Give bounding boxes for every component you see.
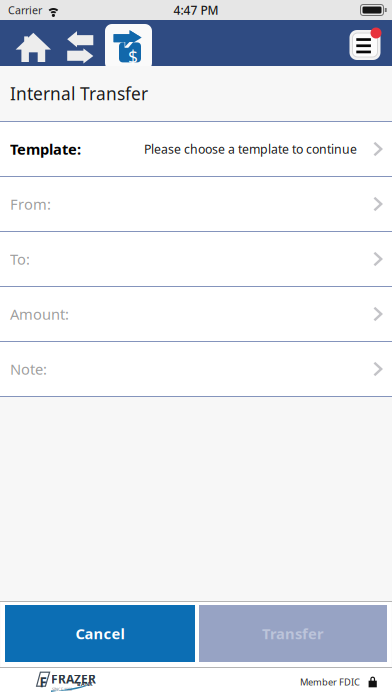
button[interactable]: Amount:: [0, 287, 392, 342]
staticText: 4:47 PM: [173, 2, 218, 18]
button[interactable]: Menu: [349, 20, 384, 66]
staticText: Transfer: [262, 624, 324, 643]
button[interactable]: Home: [8, 20, 58, 66]
staticText: Note:: [10, 359, 47, 379]
staticText: Cancel: [75, 624, 124, 643]
button[interactable]: From:: [0, 177, 392, 232]
staticText: Member FDIC: [300, 676, 360, 688]
staticText: Please choose a template to continue: [144, 141, 357, 157]
button[interactable]: Note:: [0, 342, 392, 397]
staticText: Template:: [10, 139, 81, 159]
staticText: SINCE 1902: [52, 687, 72, 692]
staticText: To:: [10, 249, 30, 269]
staticText: $: [128, 45, 138, 68]
button[interactable]: Transfer: [199, 605, 387, 662]
button[interactable]: Template:: [0, 122, 392, 177]
button[interactable]: Transfer Money: [105, 20, 152, 66]
button[interactable]: Cancel: [5, 605, 195, 662]
staticText: Internal Transfer: [10, 82, 148, 105]
staticText: From:: [10, 194, 51, 214]
button[interactable]: To:: [0, 232, 392, 287]
staticText: BANK: [77, 680, 93, 688]
staticText: Carrier: [8, 3, 42, 17]
button[interactable]: Transfers: [60, 20, 101, 66]
staticText: F: [40, 673, 47, 691]
staticText: FRAZER: [51, 671, 96, 687]
staticText: Amount:: [10, 304, 69, 324]
